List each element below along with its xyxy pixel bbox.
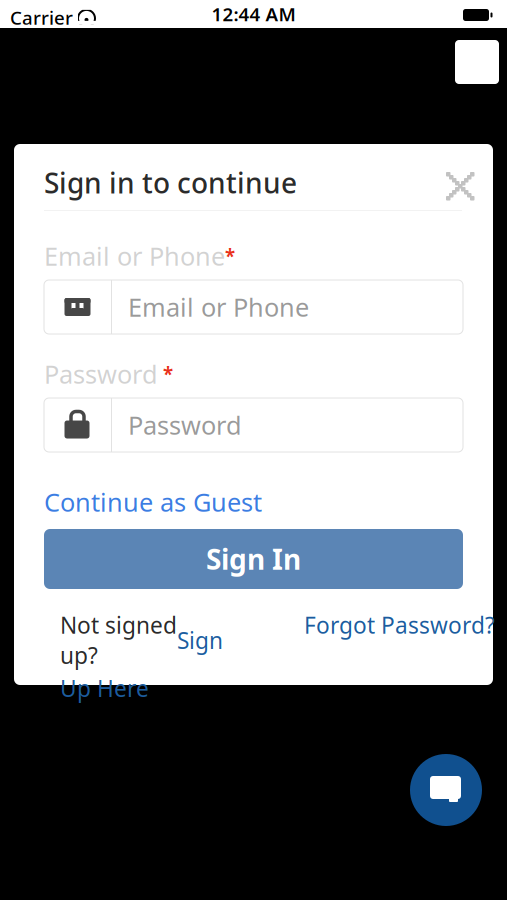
staticText: Continue as Guest	[44, 485, 262, 519]
button[interactable]: Chat	[410, 754, 482, 826]
staticText: Up Here	[60, 673, 149, 703]
staticText: *	[225, 243, 235, 268]
staticText: 12:44 AM	[211, 2, 295, 26]
button[interactable]: Forgot Password?	[304, 610, 495, 640]
button[interactable]: Close	[436, 162, 484, 210]
button[interactable]: Account	[455, 40, 499, 84]
staticText: Email or Phone	[44, 239, 225, 273]
button[interactable]: Continue as Guest	[44, 485, 262, 519]
staticText: Password	[44, 357, 158, 391]
staticText: Carrier	[10, 5, 73, 30]
staticText: Not signed up?	[60, 610, 177, 670]
staticText: Password	[128, 408, 242, 442]
staticText: Sign in to continue	[44, 164, 297, 201]
staticText: Sign	[177, 625, 223, 655]
button[interactable]: Sign In	[44, 529, 463, 589]
staticText: Email or Phone	[128, 290, 309, 324]
staticText: Forgot Password?	[304, 610, 495, 640]
staticText: *	[158, 361, 173, 386]
button[interactable]: Not signed up?	[60, 610, 235, 703]
staticText: Sign In	[206, 540, 301, 578]
